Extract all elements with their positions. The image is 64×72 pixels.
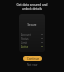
staticText: Continue [27, 57, 39, 61]
button[interactable]: Active [19, 45, 45, 49]
staticText: Get data secured and unlock details [2, 3, 62, 11]
staticText: •• [41, 33, 43, 37]
staticText: •• [41, 41, 43, 45]
button[interactable]: Continue [23, 56, 42, 61]
staticText: Not now [27, 63, 38, 67]
staticText: Status [21, 37, 29, 41]
staticText: Active [21, 45, 29, 49]
staticText: Account [21, 33, 31, 37]
staticText: •• [41, 37, 43, 41]
staticText: Limit [21, 41, 28, 45]
staticText: Secure [19, 23, 45, 27]
button[interactable]: Account [19, 33, 45, 37]
button[interactable]: Status [19, 37, 45, 41]
staticText: •• [41, 45, 43, 49]
button[interactable]: Not now [27, 63, 38, 67]
button[interactable]: Limit [19, 41, 45, 45]
